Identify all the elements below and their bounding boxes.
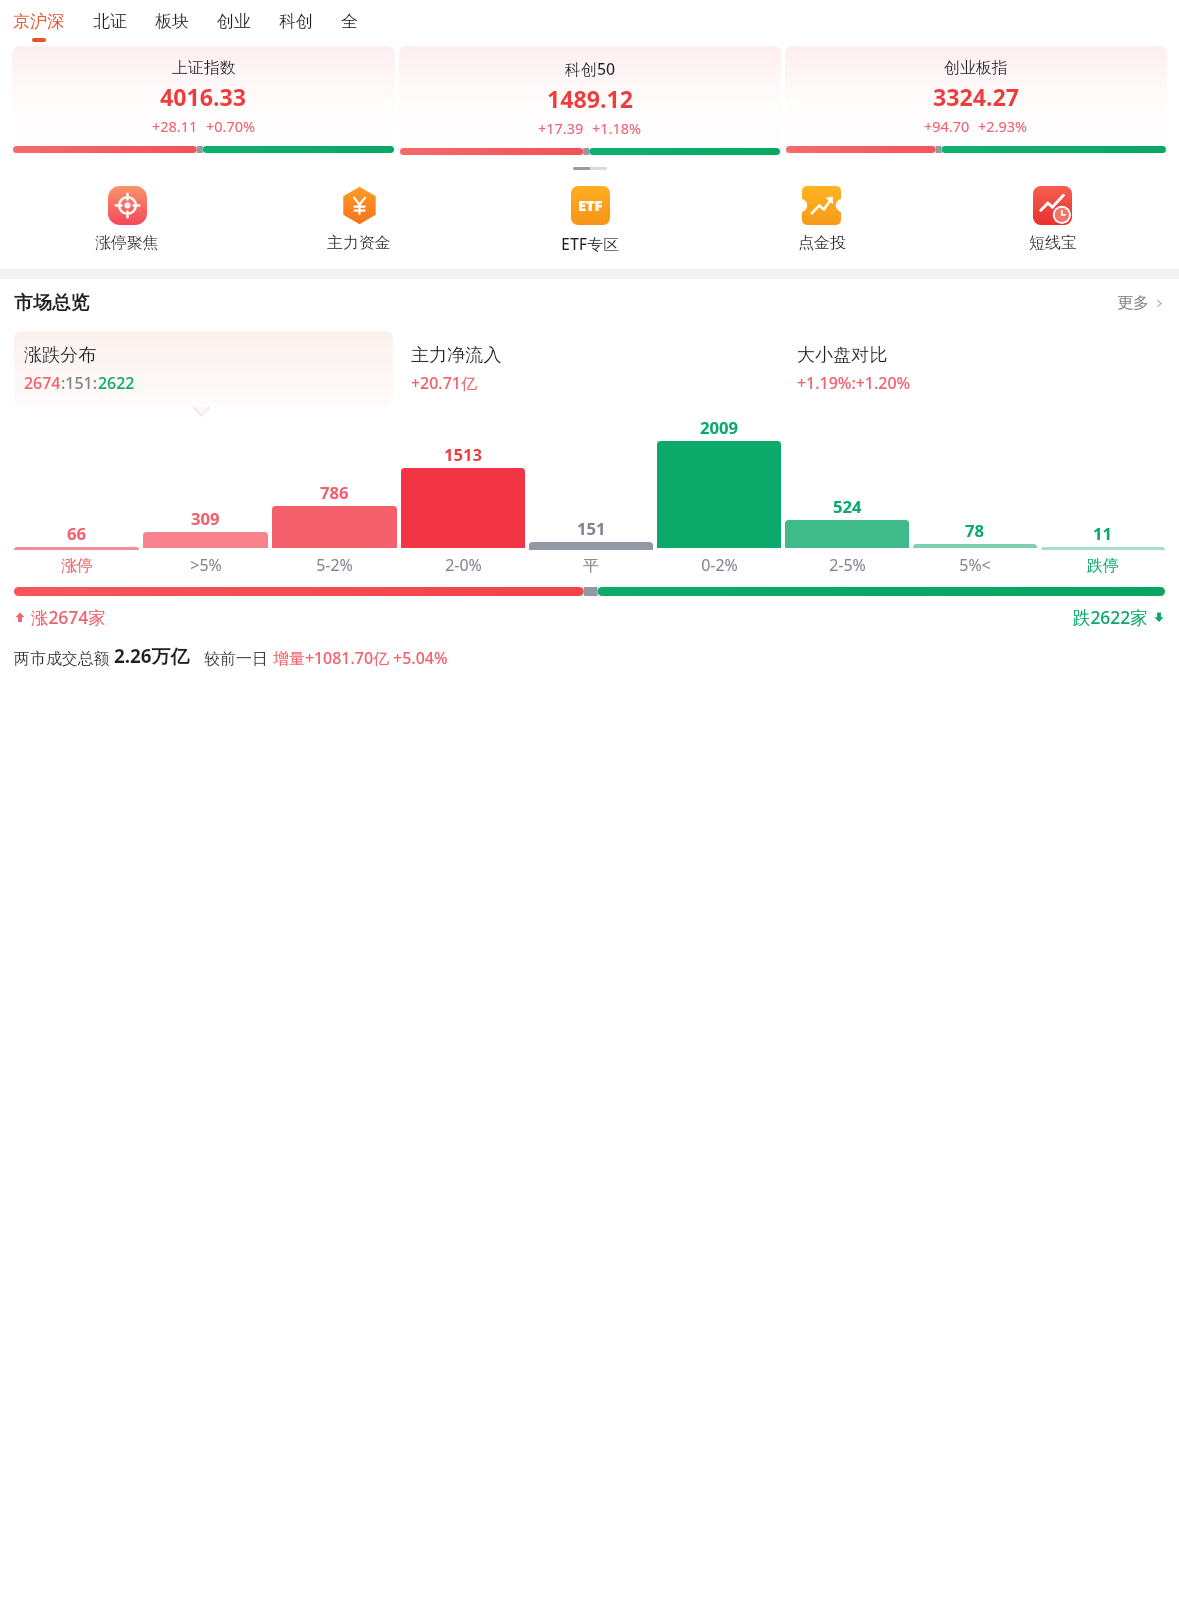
button[interactable]: 点金投 (706, 186, 937, 253)
staticText: 科创 (279, 11, 314, 32)
staticText: +17.39 (538, 119, 584, 139)
staticText: 平 (583, 556, 599, 576)
staticText: 2009 (700, 416, 739, 439)
staticText: 2.26万亿 (114, 643, 190, 669)
staticText: 跌停 (1087, 556, 1119, 576)
staticText: 5-2% (316, 554, 353, 576)
button[interactable]: 科创50 (399, 46, 781, 160)
staticText: 跌2622家 (1073, 605, 1148, 629)
staticText: 309 (191, 507, 220, 530)
staticText: 板块 (155, 11, 190, 32)
staticText: 2622 (98, 372, 135, 394)
button[interactable]: 板块 (155, 0, 217, 38)
staticText: 2-0% (445, 554, 482, 576)
staticText: 涨停聚焦 (95, 233, 159, 253)
staticText: +28.11 (152, 117, 198, 137)
staticText: 151 (577, 517, 606, 540)
button[interactable]: 短线宝 (937, 186, 1168, 253)
staticText: 更多 (1117, 293, 1149, 313)
staticText: 市场总览 (14, 291, 90, 315)
staticText: 786 (320, 481, 349, 504)
staticText: 4016.33 (160, 81, 247, 113)
staticText: +2.93% (978, 117, 1028, 137)
button[interactable]: 北证 (93, 0, 155, 38)
button[interactable]: 京沪深 (13, 0, 93, 42)
staticText: +1.19%:+1.20% (797, 372, 911, 394)
staticText: 涨跌分布 (24, 344, 97, 367)
staticText: 3324.27 (933, 81, 1020, 113)
button[interactable]: 创业 (217, 0, 279, 38)
button[interactable]: 全 (341, 0, 386, 38)
staticText: 短线宝 (1029, 233, 1077, 253)
staticText: 增量+1081.70亿 +5.04% (273, 647, 448, 669)
button[interactable]: 创业板指 (785, 46, 1167, 158)
button[interactable]: ETF专区 (475, 186, 706, 255)
button[interactable]: 上证指数 (12, 46, 395, 158)
staticText: 11 (1093, 522, 1113, 545)
button[interactable]: 涨跌分布 (14, 331, 393, 407)
staticText: >5% (190, 554, 222, 576)
staticText: 524 (833, 495, 862, 518)
staticText: 北证 (93, 11, 128, 32)
staticText: 涨停 (61, 556, 93, 576)
staticText: +0.70% (206, 117, 256, 137)
staticText: 上证指数 (172, 58, 236, 78)
staticText: 创业板指 (944, 58, 1008, 78)
staticText: 66 (67, 522, 87, 545)
staticText: +94.70 (924, 117, 970, 137)
staticText: 全 (341, 11, 359, 32)
staticText: 78 (965, 519, 985, 542)
staticText: 科创50 (565, 58, 616, 80)
staticText: 2-5% (829, 554, 866, 576)
button[interactable]: 涨停聚焦 (11, 186, 243, 253)
button[interactable]: 科创 (279, 0, 341, 38)
staticText: 主力资金 (327, 233, 391, 253)
staticText: 主力净流入 (411, 344, 502, 367)
staticText: 5%< (959, 554, 991, 576)
staticText: 1513 (444, 443, 483, 466)
staticText: 较前一日 (204, 649, 268, 669)
button[interactable]: 主力净流入 (401, 331, 779, 407)
staticText: 创业 (217, 11, 252, 32)
staticText: 0-2% (701, 554, 738, 576)
staticText: 两市成交总额 (14, 649, 110, 669)
staticText: 1489.12 (547, 83, 634, 115)
staticText: 京沪深 (13, 11, 65, 32)
staticText: +1.18% (592, 119, 642, 139)
button[interactable]: 大小盘对比 (787, 331, 1165, 407)
button[interactable]: 更多 (1117, 293, 1165, 313)
staticText: 涨2674家 (31, 605, 106, 629)
staticText: ETF (578, 196, 603, 216)
staticText: 点金投 (798, 233, 846, 253)
staticText: 大小盘对比 (797, 344, 888, 367)
staticText: ETF专区 (561, 233, 620, 255)
staticText: 2674 (24, 372, 61, 394)
staticText: +20.71亿 (411, 372, 477, 394)
staticText: :151: (61, 372, 98, 394)
button[interactable]: 主力资金 (243, 186, 475, 253)
